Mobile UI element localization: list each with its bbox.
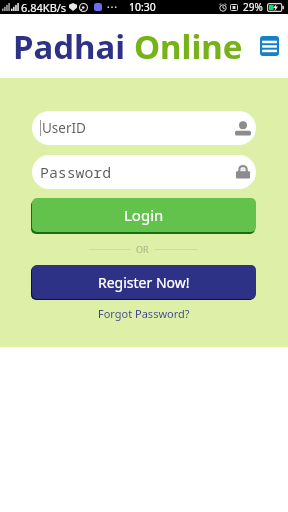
staticText: Online — [134, 24, 243, 69]
button[interactable]: UserID — [32, 111, 256, 145]
button[interactable]: Menu — [260, 36, 279, 56]
staticText: Register Now! — [98, 273, 190, 292]
button[interactable]: Register Now! — [32, 265, 256, 299]
staticText: UserID — [42, 119, 86, 137]
other: User — [235, 121, 251, 136]
button[interactable]: Login — [32, 198, 256, 232]
button[interactable]: Password — [32, 155, 256, 189]
staticText: Password — [40, 162, 112, 182]
staticText: 6.84KB/s — [21, 0, 67, 14]
other: Password — [235, 164, 251, 180]
staticText: 10:30 — [129, 0, 156, 14]
staticText: 29% — [243, 0, 263, 14]
staticText: Login — [124, 205, 164, 225]
button[interactable]: Forgot Password? — [90, 304, 198, 323]
staticText: Forgot Password? — [98, 306, 190, 321]
staticText: OR — [136, 243, 149, 255]
staticText: Padhai — [13, 24, 134, 69]
